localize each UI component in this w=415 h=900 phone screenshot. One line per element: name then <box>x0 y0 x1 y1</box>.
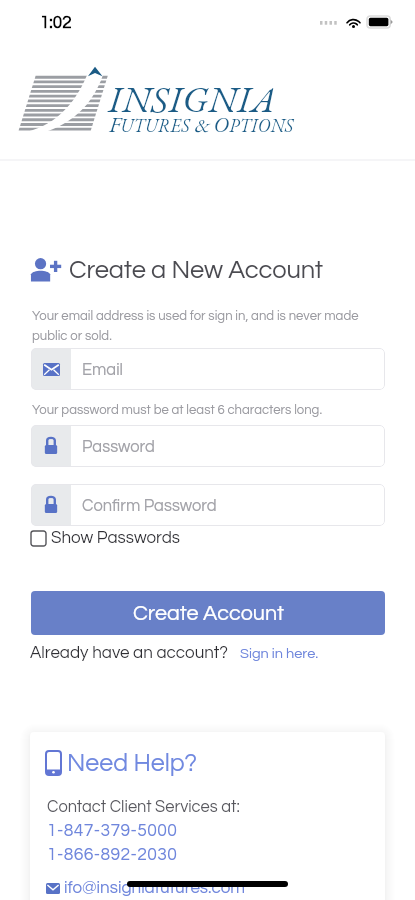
staticText: Create a New Account <box>69 257 323 283</box>
staticText: Need Help? <box>67 750 198 776</box>
button[interactable]: Create Account <box>31 591 385 635</box>
staticText: 1-866-892-2030 <box>47 846 178 864</box>
button[interactable]: 1-866-892-2030 <box>47 846 178 864</box>
button[interactable]: ifo@insigniafutures.com <box>46 879 246 897</box>
staticText: ifo@insigniafutures.com <box>64 879 246 897</box>
other: Create account <box>30 256 62 282</box>
staticText: Your email address is used for sign in, … <box>32 309 359 343</box>
staticText: INSIGNIA <box>108 75 276 123</box>
button[interactable]: 1-847-379-5000 <box>47 822 178 840</box>
staticText: Contact Client Services at: <box>47 798 240 815</box>
staticText: Create Account <box>133 602 284 624</box>
staticText: Your password must be at least 6 charact… <box>32 403 323 416</box>
staticText: Confirm Password <box>82 497 217 514</box>
button[interactable]: Confirm Password <box>31 484 385 526</box>
button[interactable]: Email <box>31 348 385 390</box>
staticText: Show Passwords <box>51 529 181 547</box>
button[interactable]: Password <box>31 425 385 467</box>
staticText: Password <box>82 438 155 455</box>
staticText: FUTURES & OPTIONS <box>109 110 294 139</box>
staticText: Email <box>82 361 123 378</box>
staticText: 1:02 <box>40 14 72 32</box>
button[interactable]: Sign in here. <box>240 646 319 661</box>
staticText: Already have an account? <box>30 644 228 662</box>
staticText: Sign in here. <box>240 646 319 661</box>
button[interactable]: Show Passwords <box>31 529 181 547</box>
staticText: 1-847-379-5000 <box>47 822 178 840</box>
